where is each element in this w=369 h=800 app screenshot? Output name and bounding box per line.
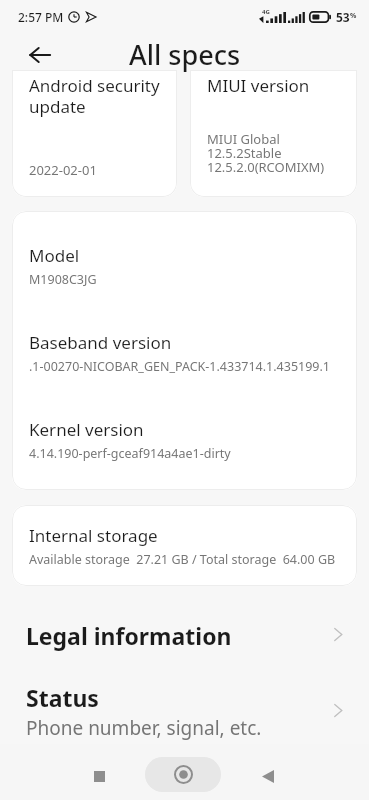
- button[interactable]: Back: [22, 37, 58, 73]
- staticText: 4.14.190-perf-gceaf914a4ae1-dirty: [29, 445, 231, 462]
- button[interactable]: Legal information: [12, 604, 357, 667]
- staticText: Legal information: [26, 620, 232, 651]
- staticText: Kernel version: [29, 418, 144, 441]
- button[interactable]: Android security update: [12, 70, 177, 197]
- staticText: 2022-02-01: [29, 161, 97, 179]
- staticText: Phone number, signal, etc.: [26, 715, 262, 741]
- staticText: 2:57 PM: [18, 9, 64, 25]
- staticText: M1908C3JG: [29, 271, 97, 288]
- staticText: Internal storage: [29, 524, 158, 547]
- staticText: %: [350, 11, 357, 21]
- button[interactable]: Recent apps: [77, 754, 122, 799]
- staticText: Available storage 27.21 GB / Total stora…: [29, 551, 336, 568]
- staticText: Model: [29, 244, 80, 267]
- staticText: 53: [336, 9, 350, 25]
- button[interactable]: Status: [12, 667, 357, 747]
- staticText: 4G: [262, 8, 270, 16]
- staticText: Android security update: [29, 74, 160, 118]
- staticText: Baseband version: [29, 331, 172, 354]
- staticText: MIUI version: [207, 74, 310, 97]
- button[interactable]: Back: [245, 754, 290, 799]
- button[interactable]: MIUI version: [190, 70, 357, 197]
- staticText: All specs: [129, 36, 241, 73]
- staticText: Status: [26, 682, 99, 713]
- button[interactable]: Home: [145, 757, 221, 792]
- staticText: .1-00270-NICOBAR_GEN_PACK-1.433714.1.435…: [29, 358, 330, 375]
- staticText: MIUI Global 12.5.2Stable 12.5.2.0(RCOMIX…: [207, 130, 325, 176]
